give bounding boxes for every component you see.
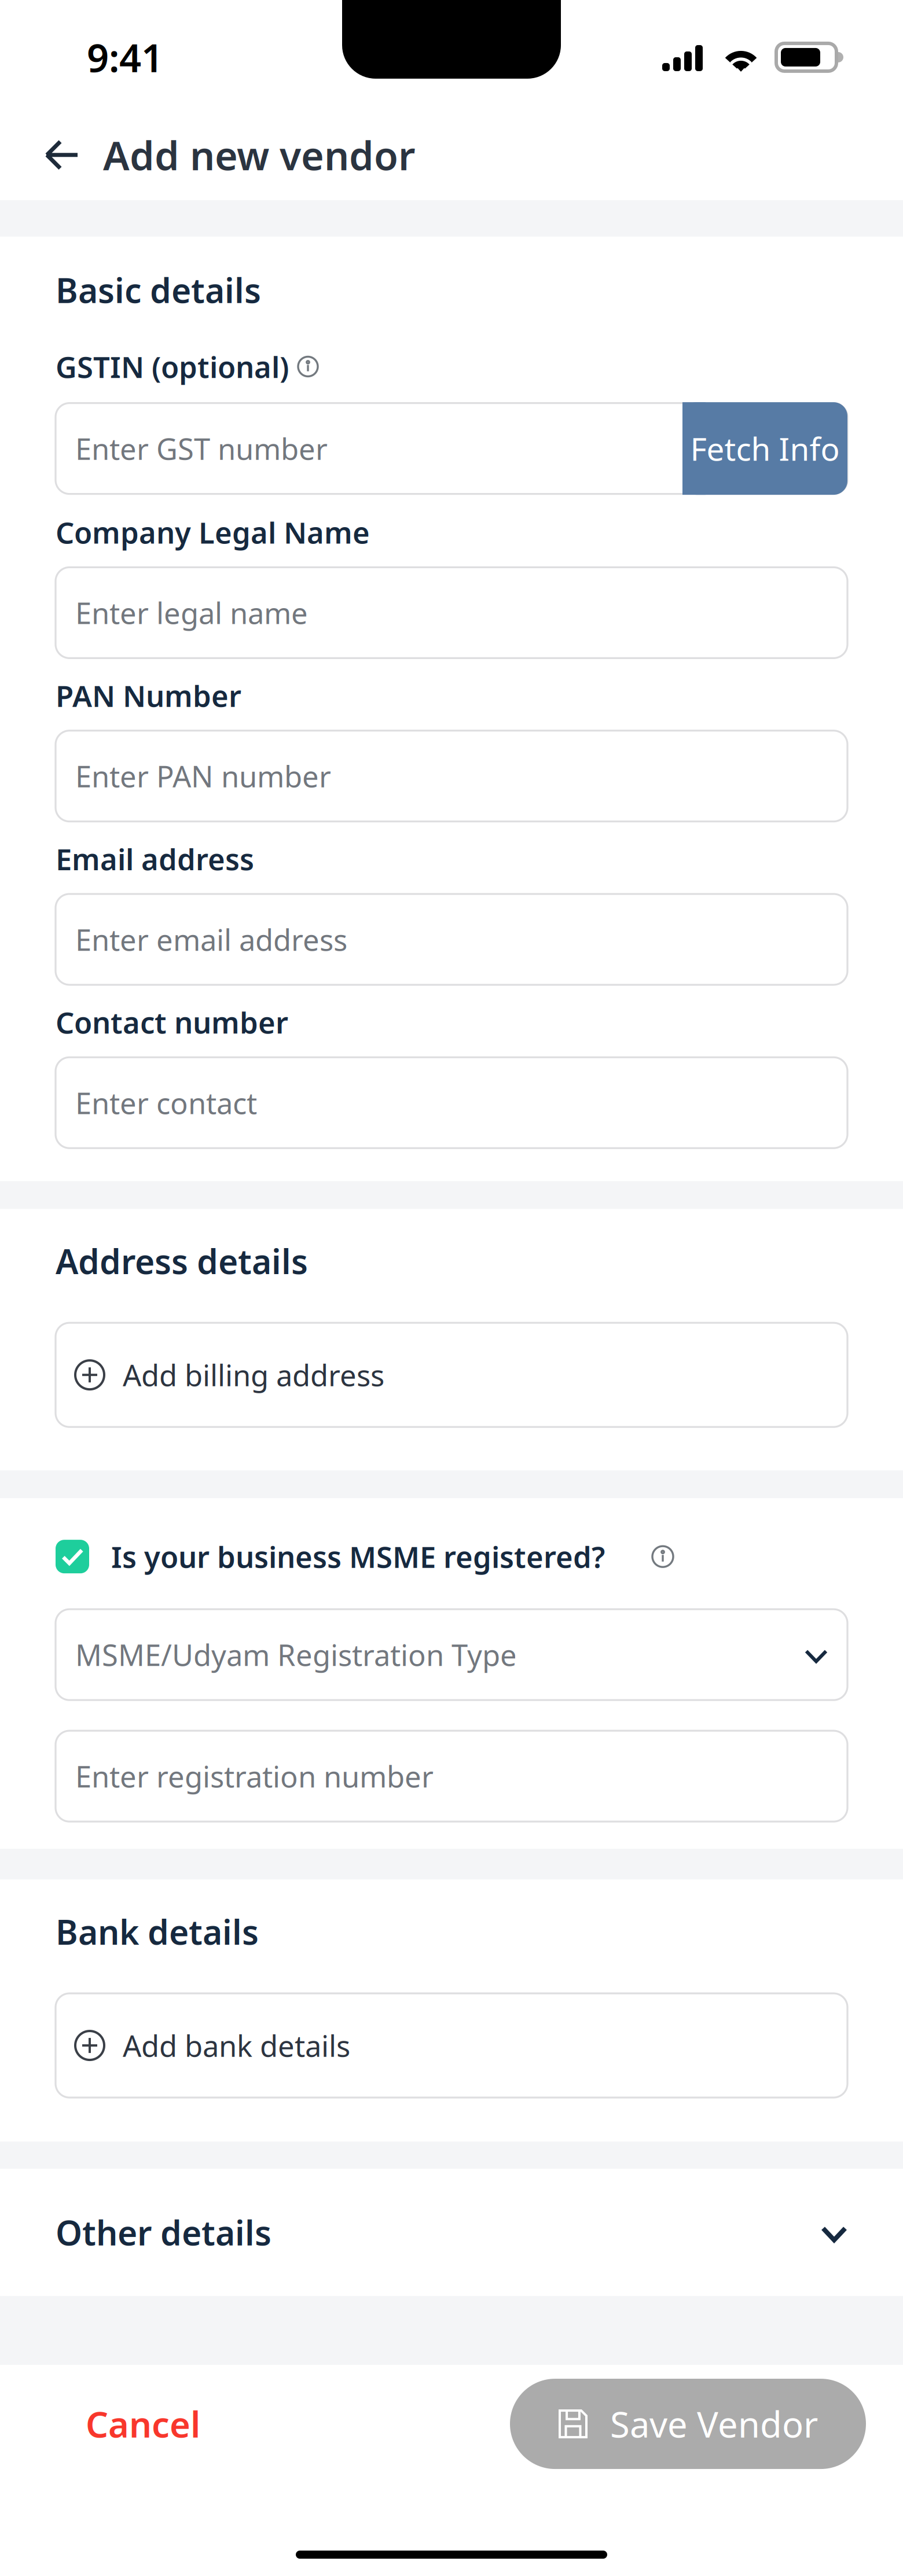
staticText: Enter registration number [75,1757,434,1796]
button[interactable]: Save Vendor [510,2379,866,2469]
button[interactable]: Back [44,139,80,171]
staticText: Enter contact [75,1083,257,1122]
staticText: Other details [56,2210,271,2255]
staticText: Fetch Info [690,427,840,469]
button[interactable]: Cancel [76,2390,210,2458]
staticText: PAN Number [56,676,241,715]
button[interactable]: Enter PAN number [56,731,847,821]
staticText: Company Legal Name [56,513,370,552]
button[interactable]: Enter registration number [56,1731,847,1822]
button[interactable]: Fetch Info [682,402,847,495]
staticText: Address details [56,1238,308,1283]
staticText: Is your business MSME registered? [111,1537,605,1576]
staticText: Email address [56,839,254,878]
staticText: Add bank details [123,2026,350,2065]
staticText: Enter PAN number [75,757,331,795]
staticText: Basic details [56,267,261,312]
staticText: Bank details [56,1909,259,1954]
staticText: Enter email address [75,920,347,959]
button[interactable]: Is your business MSME registered? [56,1540,847,1573]
staticText: Save Vendor [610,2400,818,2447]
staticText: Enter GST number [75,429,328,468]
button[interactable]: Enter legal name [56,567,847,658]
staticText: MSME/Udyam Registration Type [75,1635,517,1674]
button[interactable]: Add billing address [56,1323,847,1427]
button[interactable]: MSME/Udyam Registration Type [56,1609,847,1700]
button[interactable]: Enter contact [56,1057,847,1148]
button[interactable]: Other details [0,2169,903,2296]
staticText: Add new vendor [103,129,416,181]
staticText: Cancel [86,2400,200,2447]
staticText: Add billing address [123,1355,384,1394]
staticText: GSTIN (optional) [56,347,289,386]
button[interactable]: Add bank details [56,1993,847,2098]
button[interactable]: Enter email address [56,894,847,985]
staticText: 9:41 [87,32,163,83]
staticText: Contact number [56,1003,288,1042]
staticText: Enter legal name [75,593,308,632]
